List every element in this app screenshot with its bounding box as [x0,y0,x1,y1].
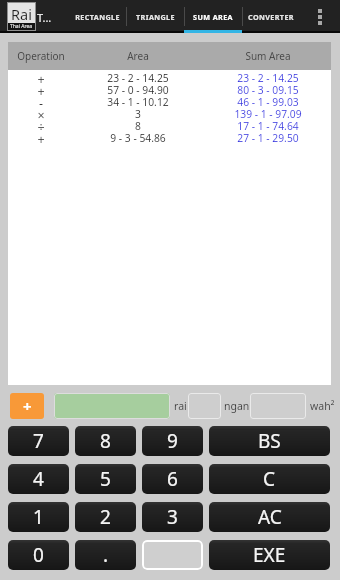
button[interactable] [54,393,170,419]
button[interactable]: AC [209,502,330,532]
staticText: T... [37,10,52,25]
staticText: Rai [11,4,32,24]
staticText: 46 - 1 - 99.03 [208,95,328,107]
button[interactable]: 0 [8,540,69,570]
staticText: 5 [100,466,111,492]
staticText: 0 [33,542,44,568]
staticText: ÷ [21,119,61,131]
staticText: 23 - 2 - 14.25 [78,71,198,83]
button[interactable]: TRIANGLE [126,0,184,33]
staticText: TRIANGLE [136,12,175,22]
button[interactable]: More options [300,0,340,33]
staticText: . [103,542,109,568]
button[interactable]: BS [209,426,330,456]
button[interactable]: RECTANGLE [68,0,126,33]
staticText: 6 [167,466,178,492]
staticText: Area [78,49,198,63]
button[interactable]: 7 [8,426,69,456]
button[interactable]: 2 [75,502,136,532]
staticText: + [21,131,61,143]
staticText: 2 [100,504,111,530]
staticText: Sum Area [208,49,328,63]
staticText: 8 [78,119,198,131]
staticText: AC [258,504,282,530]
staticText: C [263,466,276,492]
staticText: rai [174,399,187,413]
staticText: Thai Area [10,23,33,30]
staticText: SUM AREA [193,12,233,22]
button[interactable] [250,393,306,419]
button[interactable]: App icon [7,2,36,31]
staticText: 3 [167,504,178,530]
button[interactable]: C [209,464,330,494]
staticText: RECTANGLE [75,12,120,22]
staticText: 27 - 1 - 29.50 [208,131,328,143]
button[interactable]: CONVERTER [242,0,300,33]
button[interactable]: 6 [142,464,203,494]
staticText: 57 - 0 - 94.90 [78,83,198,95]
staticText: + [21,71,61,83]
button[interactable] [142,540,203,570]
staticText: 80 - 3 - 09.15 [208,83,328,95]
staticText: + [21,83,61,95]
button[interactable]: 9 [142,426,203,456]
staticText: 139 - 1 - 97.09 [208,107,328,119]
button[interactable]: + [10,393,44,419]
staticText: 8 [100,428,111,454]
button[interactable]: 4 [8,464,69,494]
staticText: 7 [33,428,44,454]
staticText: 9 - 3 - 54.86 [78,131,198,143]
button[interactable]: SUM AREA [184,0,242,33]
staticText: wah² [310,399,335,413]
button[interactable]: 5 [75,464,136,494]
staticText: ngan [224,399,250,413]
button[interactable]: 3 [142,502,203,532]
staticText: 4 [33,466,44,492]
button[interactable] [188,393,221,419]
button[interactable]: 8 [75,426,136,456]
staticText: EXE [253,542,286,568]
staticText: 1 [33,504,44,530]
button[interactable]: 1 [8,502,69,532]
staticText: + [23,396,32,416]
staticText: 9 [167,428,178,454]
staticText: - [21,95,61,107]
staticText: CONVERTER [248,12,294,22]
button[interactable]: . [75,540,136,570]
staticText: 3 [78,107,198,119]
staticText: 23 - 2 - 14.25 [208,71,328,83]
button[interactable]: EXE [209,540,330,570]
staticText: BS [258,428,281,454]
staticText: 17 - 1 - 74.64 [208,119,328,131]
staticText: × [21,107,61,119]
staticText: 34 - 1 - 10.12 [78,95,198,107]
staticText: Operation [0,49,101,63]
